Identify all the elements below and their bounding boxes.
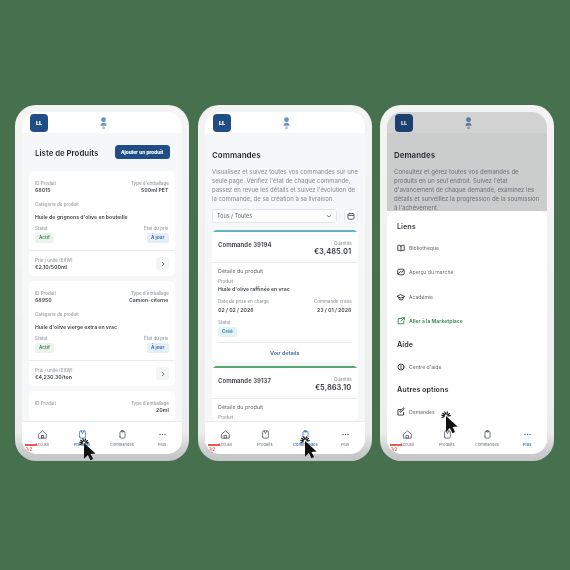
staticText: 23 / 01 / 2026 [317, 307, 352, 313]
button[interactable]: Plus [142, 422, 182, 454]
button[interactable]: Bibliothèque [387, 241, 547, 255]
button[interactable]: Produits [245, 422, 285, 454]
staticText: État du prix [144, 226, 169, 231]
staticText: État du prix [144, 336, 169, 341]
staticText: 500ml PET [141, 187, 169, 193]
staticText: Produits [74, 442, 91, 447]
staticText: Centre d'aide [409, 364, 442, 370]
staticText: Accueil [400, 442, 414, 447]
staticText: Prix / unité (EXW) [35, 368, 73, 373]
button[interactable]: Plus [325, 422, 365, 454]
button[interactable]: Aperçu du marché [387, 265, 547, 279]
staticText: Commande créée [314, 299, 352, 304]
staticText: Accueil [35, 442, 49, 447]
staticText: Commandes [110, 442, 134, 447]
button[interactable]: Profil [282, 117, 291, 129]
staticText: Produits [439, 442, 455, 447]
staticText: Aperçu du marché [409, 269, 454, 275]
staticText: Aide [397, 340, 414, 349]
button[interactable]: Accueil [205, 422, 245, 454]
button[interactable]: ID Produit [29, 281, 175, 386]
staticText: 20ml [156, 407, 169, 413]
button[interactable]: Voir le produit [156, 367, 169, 380]
button[interactable]: Plus [507, 422, 547, 454]
staticText: Voir détails [270, 350, 300, 356]
staticText: €2.10/500ml [35, 264, 67, 270]
staticText: LL [219, 120, 226, 127]
staticText: Produit [218, 279, 234, 284]
button[interactable]: Commandes [467, 422, 507, 454]
staticText: Plus [523, 442, 532, 447]
staticText: Date de prise en charge [218, 299, 269, 304]
button[interactable]: Aller à la Marketplace [387, 314, 547, 328]
button[interactable]: Produits [427, 422, 467, 454]
staticText: Catégorie de produit [35, 202, 79, 207]
staticText: 68950 [35, 297, 52, 303]
staticText: Accueil [218, 442, 232, 447]
button[interactable]: Calendrier [344, 209, 358, 223]
staticText: Tous / Toutes [217, 213, 253, 220]
staticText: Ajouter un produit [121, 149, 164, 155]
button[interactable]: Ajouter un produit [115, 145, 170, 159]
button[interactable]: Commandes [102, 422, 142, 454]
staticText: Consultez et gérez toutes vos demandes d… [394, 168, 540, 211]
staticText: Commande 39137 [218, 377, 271, 384]
staticText: Autres options [397, 385, 449, 394]
button[interactable]: Commande 39194 [212, 230, 358, 362]
staticText: Type d'emballage [131, 401, 169, 406]
staticText: 02 / 02 / 2026 [218, 307, 254, 313]
staticText: Détails du produit [218, 268, 263, 275]
staticText: ID Produit [35, 291, 56, 296]
staticText: Aller à la Marketplace [409, 318, 463, 324]
staticText: Type d'emballage [131, 291, 169, 296]
staticText: Demandes [409, 409, 435, 415]
button[interactable]: Accueil [213, 114, 231, 132]
staticText: Catégorie de produit [35, 312, 79, 317]
button[interactable]: ID Produit [29, 171, 175, 276]
button[interactable]: Voir détails [266, 348, 304, 358]
staticText: À jour [151, 345, 165, 351]
staticText: €4,230.30/ton [35, 374, 72, 380]
button[interactable]: Centre d'aide [387, 360, 547, 374]
staticText: ID Produit [35, 401, 56, 406]
staticText: €5,863.10 [315, 383, 352, 392]
staticText: Plus [341, 442, 349, 447]
button[interactable]: Profil [99, 117, 108, 129]
staticText: 1/2 [391, 447, 398, 452]
button[interactable]: Tous / Toutes [212, 209, 337, 223]
staticText: LL [401, 120, 408, 127]
staticText: Huile d'olive raffinée en vrac [218, 286, 290, 292]
button[interactable]: Académie [387, 290, 547, 304]
staticText: Visualisez et suivez toutes vos commande… [212, 168, 358, 202]
staticText: €3,485.01 [314, 247, 352, 256]
staticText: Commande 39194 [218, 241, 272, 248]
staticText: Académie [409, 294, 434, 300]
staticText: Prix / unité (EXW) [35, 258, 73, 263]
button[interactable]: Accueil [22, 422, 62, 454]
staticText: Liste de Produits [35, 148, 99, 157]
staticText: Commandes [293, 442, 318, 447]
button[interactable]: ID Produit [29, 391, 175, 421]
button[interactable]: Accueil [387, 422, 427, 454]
staticText: 1/2 [209, 447, 216, 452]
staticText: 1/2 [26, 447, 33, 452]
button[interactable]: Commandes [285, 422, 325, 454]
staticText: Camion-citerne [129, 297, 169, 303]
staticText: Quantité [334, 241, 352, 246]
button[interactable]: Accueil [30, 114, 48, 132]
staticText: Commandes [212, 150, 261, 160]
staticText: Plus [158, 442, 166, 447]
staticText: Créé [222, 329, 233, 335]
staticText: À jour [151, 235, 165, 241]
staticText: Statut [35, 336, 48, 341]
staticText: Type d'emballage [131, 181, 169, 186]
button[interactable]: Demandes [387, 405, 547, 419]
button[interactable]: Commande 39137 [212, 366, 358, 421]
button[interactable]: Produits [62, 422, 102, 454]
staticText: Quantité [334, 377, 352, 382]
staticText: Commandes [475, 442, 499, 447]
staticText: Détails du produit [218, 404, 263, 411]
button[interactable]: Profil [464, 117, 473, 129]
button[interactable]: Accueil [395, 114, 413, 132]
button[interactable]: Voir le produit [156, 257, 169, 270]
